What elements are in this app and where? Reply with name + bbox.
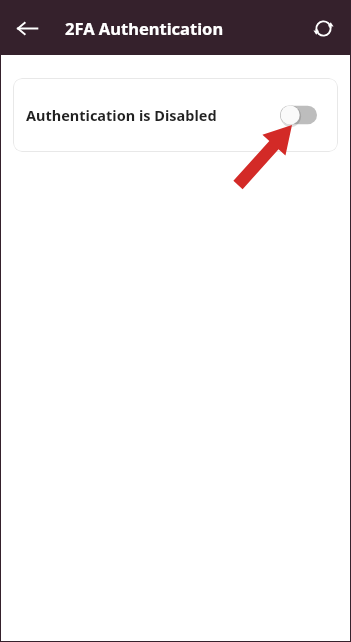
- staticText: Authentication is Disabled: [26, 105, 217, 125]
- button[interactable]: Back: [8, 9, 46, 47]
- button[interactable]: Authentication is Disabled: [13, 78, 338, 152]
- button[interactable]: Refresh: [304, 9, 342, 47]
- staticText: 2FA Authentication: [65, 17, 224, 39]
- button[interactable]: Enable authentication: [280, 102, 320, 128]
